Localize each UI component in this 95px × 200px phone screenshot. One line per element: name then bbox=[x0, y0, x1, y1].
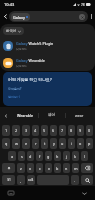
staticText: m bbox=[74, 166, 78, 171]
button[interactable]: 2 bbox=[12, 125, 20, 136]
button[interactable]: k bbox=[72, 151, 79, 161]
button[interactable]: z bbox=[17, 163, 25, 173]
staticText: 한/A bbox=[28, 178, 34, 182]
staticText: 10:43 bbox=[4, 2, 15, 7]
button[interactable]: Switch keyboard bbox=[0, 186, 22, 200]
staticText: o bbox=[79, 141, 82, 146]
staticText: l bbox=[84, 154, 85, 159]
button[interactable]: u bbox=[59, 138, 66, 149]
button[interactable]: wear bbox=[66, 107, 92, 124]
staticText: g bbox=[47, 154, 50, 159]
button[interactable]: Back bbox=[0, 9, 10, 24]
staticText: t bbox=[44, 141, 46, 146]
button[interactable]: Shift bbox=[2, 163, 15, 173]
button[interactable]: 7 bbox=[59, 125, 66, 136]
button[interactable]: h bbox=[54, 151, 61, 161]
button[interactable]: 8 bbox=[68, 125, 75, 136]
staticText: v bbox=[48, 166, 50, 171]
staticText: x bbox=[29, 166, 32, 171]
button[interactable]: v bbox=[45, 163, 52, 173]
button[interactable]: b bbox=[54, 163, 61, 173]
button[interactable]: f bbox=[36, 151, 43, 161]
staticText: s bbox=[21, 154, 23, 159]
staticText: 알아보기 bbox=[8, 95, 20, 99]
button[interactable]: 6 bbox=[50, 125, 57, 136]
button[interactable]: g bbox=[45, 151, 52, 161]
button[interactable]: w bbox=[12, 138, 20, 149]
button[interactable]: 5 bbox=[41, 125, 48, 136]
button[interactable]: n bbox=[63, 163, 70, 173]
staticText: 3 bbox=[25, 128, 28, 133]
staticText: Galaxy bbox=[13, 15, 25, 20]
button[interactable]: Galaxy Wearable bbox=[0, 54, 95, 71]
staticText: . bbox=[74, 178, 76, 183]
button[interactable]: Wearable bbox=[11, 107, 38, 124]
staticText: 어떤 게임을 찾고 있나요? bbox=[8, 77, 52, 82]
button[interactable]: 9 bbox=[77, 125, 84, 136]
staticText: 한국어 bbox=[6, 29, 17, 33]
staticText: 0 bbox=[88, 128, 91, 133]
button[interactable]: Backspace bbox=[81, 163, 93, 173]
staticText: Wearable bbox=[17, 113, 33, 118]
staticText: wear bbox=[75, 113, 84, 118]
button[interactable]: p bbox=[86, 138, 93, 149]
button[interactable]: Clear search bbox=[79, 14, 85, 20]
button[interactable]: m bbox=[72, 163, 79, 173]
staticText: 7 bbox=[61, 128, 64, 133]
staticText: Galaxy Watch5 Plugin bbox=[16, 41, 54, 46]
button[interactable]: Hide keyboard bbox=[73, 186, 95, 200]
button[interactable]: e bbox=[22, 138, 30, 149]
button[interactable]: r bbox=[32, 138, 39, 149]
button[interactable]: l bbox=[81, 151, 88, 161]
button[interactable]: Galaxy bbox=[9, 11, 88, 22]
button[interactable]: . bbox=[71, 175, 79, 185]
staticText: 9 bbox=[79, 128, 82, 133]
staticText: k bbox=[74, 154, 77, 159]
staticText: 4 bbox=[34, 128, 37, 133]
staticText: 78 bbox=[81, 3, 85, 7]
staticText: b bbox=[56, 166, 59, 171]
button[interactable]: 3 bbox=[22, 125, 30, 136]
staticText: z bbox=[20, 166, 22, 171]
staticText: Galaxy Wearable bbox=[16, 58, 45, 63]
staticText: 2 bbox=[15, 128, 18, 133]
staticText: i bbox=[71, 141, 72, 146]
staticText: u bbox=[61, 141, 64, 146]
staticText: , bbox=[20, 178, 22, 183]
staticText: q bbox=[5, 141, 8, 146]
button[interactable]: d bbox=[27, 151, 34, 161]
button[interactable]: Search bbox=[81, 175, 93, 185]
button[interactable]: j bbox=[63, 151, 70, 161]
button[interactable]: 0 bbox=[86, 125, 93, 136]
staticText: p bbox=[88, 141, 91, 146]
button[interactable]: q bbox=[2, 138, 10, 149]
staticText: a bbox=[11, 154, 14, 159]
button[interactable]: y bbox=[50, 138, 57, 149]
button[interactable]: Galaxy Watch5 Plugin bbox=[0, 37, 95, 54]
button[interactable]: 한국어 bbox=[3, 27, 24, 35]
button[interactable]: !#1 bbox=[2, 175, 15, 185]
button[interactable]: t bbox=[41, 138, 48, 149]
button[interactable]: i bbox=[68, 138, 75, 149]
button[interactable]: , bbox=[17, 175, 25, 185]
staticText: 1 bbox=[5, 128, 8, 133]
staticText: r bbox=[35, 141, 37, 146]
button[interactable]: x bbox=[27, 163, 34, 173]
button[interactable]: 웨어 bbox=[39, 107, 65, 124]
staticText: c bbox=[39, 166, 41, 171]
staticText: e bbox=[25, 141, 28, 146]
staticText: n bbox=[65, 166, 68, 171]
button[interactable]: o bbox=[77, 138, 84, 149]
button[interactable]: 한/A bbox=[27, 175, 35, 185]
button[interactable]: 1 bbox=[2, 125, 10, 136]
button[interactable]: a bbox=[8, 151, 16, 161]
button[interactable]: 4 bbox=[32, 125, 39, 136]
staticText: y bbox=[53, 141, 55, 146]
button[interactable]: Previous suggestions bbox=[0, 107, 11, 124]
button[interactable]: c bbox=[36, 163, 43, 173]
button[interactable]: 어떤 게임을 찾고 있나요? bbox=[3, 72, 92, 106]
staticText: 무엇을까? bbox=[8, 87, 22, 91]
button[interactable]: s bbox=[18, 151, 25, 161]
staticText: 삼성전자 bbox=[16, 64, 27, 67]
